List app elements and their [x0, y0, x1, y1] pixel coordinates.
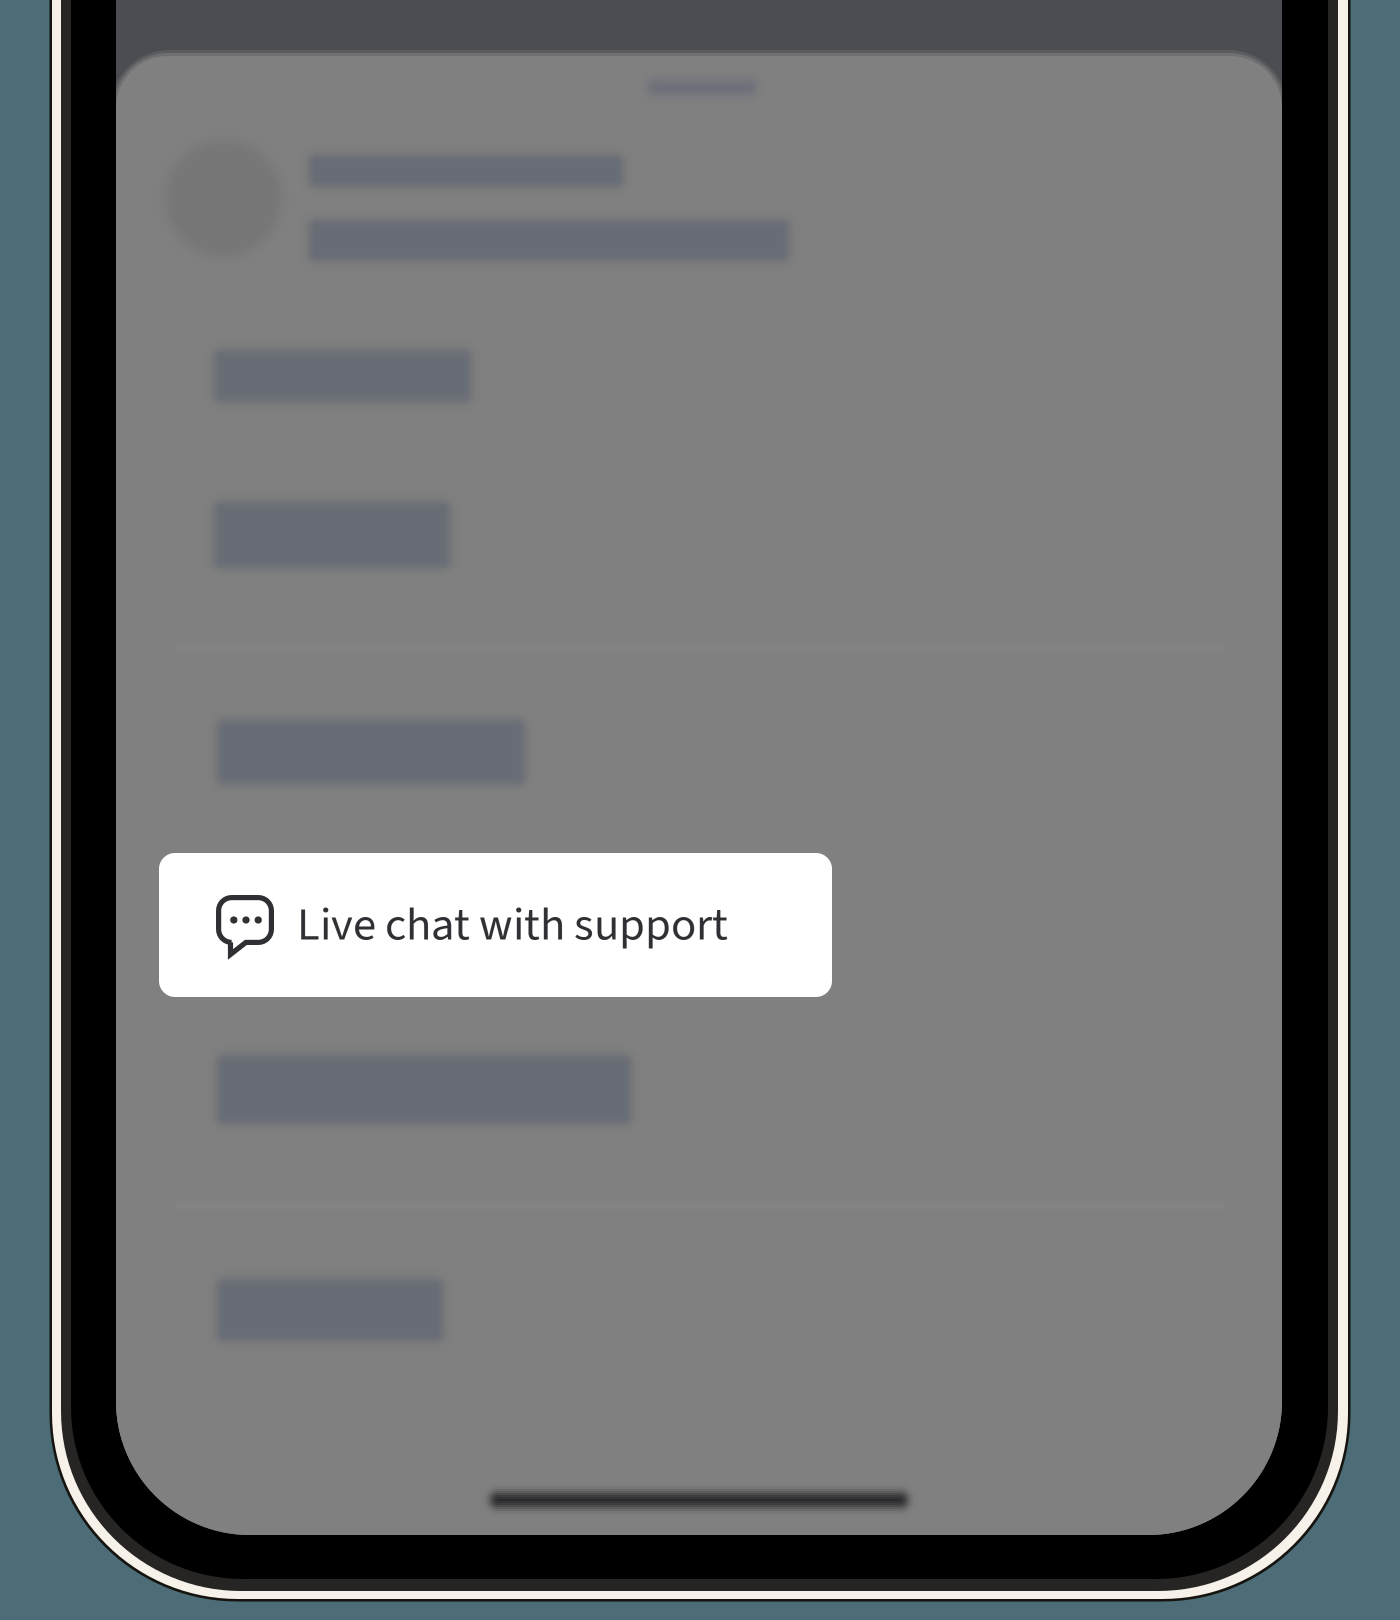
button[interactable]: Live chat with support	[159, 853, 832, 997]
staticText: Live chat with support	[297, 892, 728, 958]
